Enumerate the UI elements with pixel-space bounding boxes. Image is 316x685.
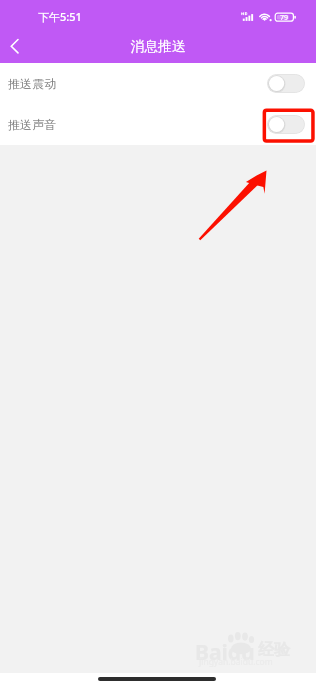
staticText: 推送声音: [8, 117, 57, 132]
button[interactable]: Toggle 推送声音: [267, 115, 305, 134]
staticText: 经验: [258, 640, 290, 660]
button[interactable]: Toggle 推送震动: [267, 74, 305, 93]
staticText: 79: [280, 13, 289, 23]
staticText: jingyan.baidu.com: [199, 656, 273, 668]
button[interactable]: 推送震动: [0, 63, 316, 104]
staticText: Baidu: [195, 638, 255, 667]
staticText: 消息推送: [0, 38, 316, 55]
staticText: 下午5:51: [38, 9, 82, 24]
button[interactable]: Back: [0, 30, 31, 62]
button[interactable]: 推送声音: [0, 104, 316, 145]
staticText: 推送震动: [8, 76, 57, 91]
